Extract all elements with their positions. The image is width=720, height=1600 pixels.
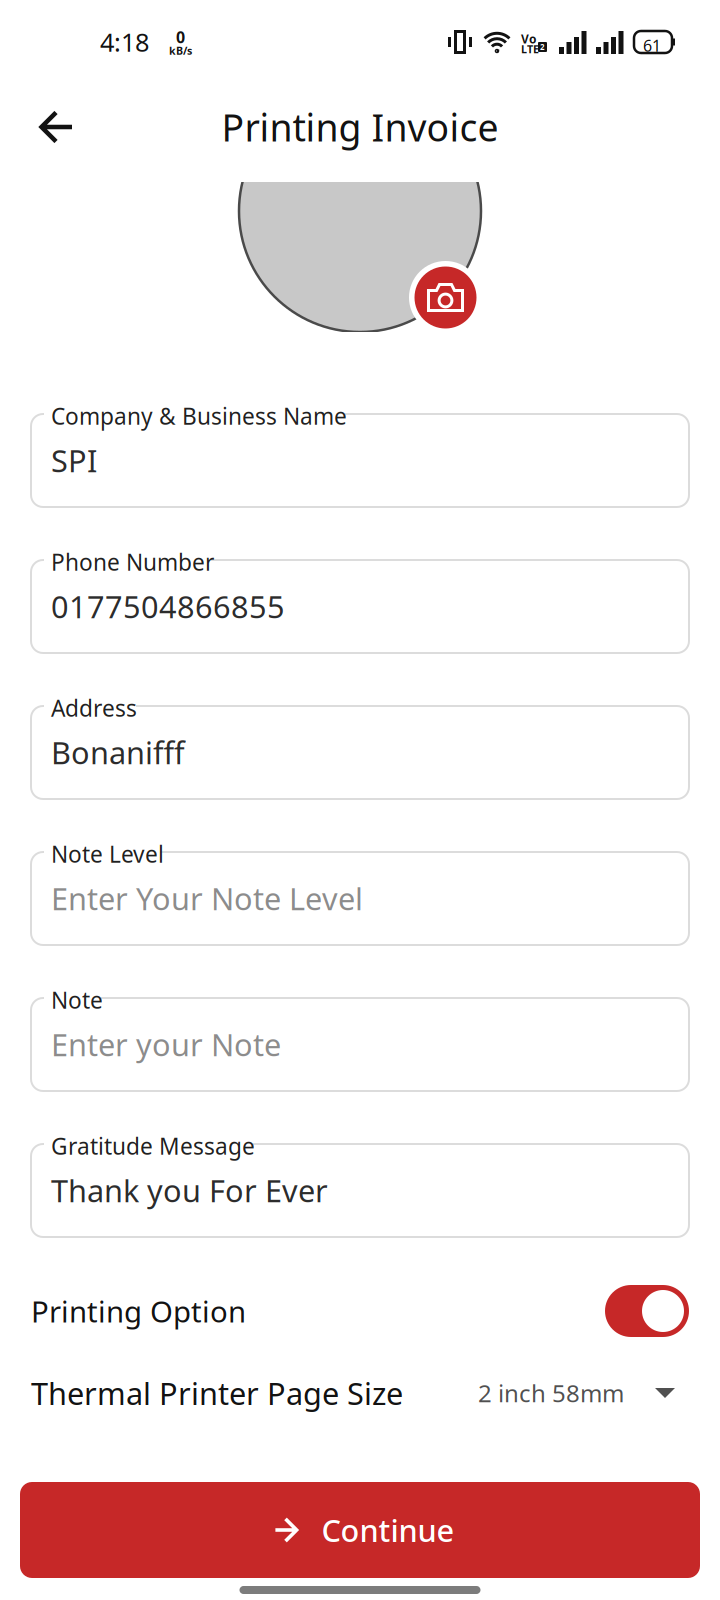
button[interactable]: Printing Option [0, 1270, 720, 1352]
staticText: Printing Option [31, 1291, 246, 1330]
staticText: Company & Business Name [51, 401, 347, 431]
staticText: Note [51, 985, 103, 1015]
staticText: Bonanifff [51, 732, 185, 773]
staticText: Phone Number [51, 547, 214, 577]
staticText: 0177504866855 [51, 586, 285, 627]
staticText: Enter Your Note Level [51, 878, 363, 919]
staticText: Thermal Printer Page Size [31, 1373, 403, 1413]
button[interactable]: Gratitude Message [31, 1144, 689, 1237]
button[interactable]: Company & Business Name [31, 414, 689, 507]
staticText: Enter your Note [51, 1024, 281, 1065]
button[interactable]: Change profile photo [409, 261, 482, 334]
staticText: kB/s [169, 43, 192, 58]
staticText: 2 [540, 42, 545, 52]
button[interactable]: Note Level [31, 852, 689, 945]
button[interactable]: Phone Number [31, 560, 689, 653]
staticText: Note Level [51, 839, 164, 869]
button[interactable]: Back [22, 93, 90, 161]
button[interactable]: Note [31, 998, 689, 1091]
button[interactable]: Thermal Printer Page Size [0, 1352, 720, 1434]
staticText: Gratitude Message [51, 1131, 255, 1161]
staticText: LTE [521, 42, 539, 56]
staticText: 61 [643, 35, 661, 56]
staticText: 0 [176, 26, 185, 47]
staticText: Vo [521, 31, 537, 47]
staticText: SPI [51, 440, 97, 481]
staticText: Printing Invoice [221, 102, 498, 152]
staticText: Continue [321, 1510, 454, 1550]
button[interactable]: Continue [20, 1482, 700, 1578]
staticText: Thank you For Ever [51, 1170, 328, 1211]
button[interactable]: Address [31, 706, 689, 799]
staticText: Address [51, 693, 137, 723]
staticText: 4:18 [100, 25, 149, 59]
staticText: 2 inch 58mm [478, 1377, 624, 1409]
